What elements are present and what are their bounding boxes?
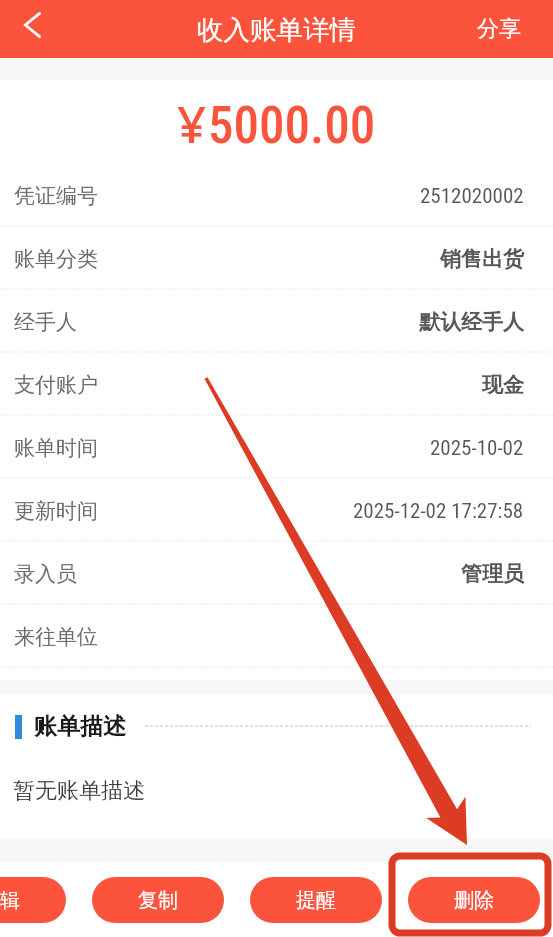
button[interactable]: 经手人	[0, 290, 553, 353]
button[interactable]: 复制	[92, 877, 224, 923]
staticText: 管理员	[461, 561, 524, 587]
staticText: 经手人	[14, 309, 77, 335]
staticText: 2512020002	[420, 184, 524, 209]
staticText: 凭证编号	[14, 183, 98, 209]
staticText: 提醒	[296, 888, 336, 913]
button[interactable]: 凭证编号	[0, 164, 553, 227]
button[interactable]: Back	[0, 0, 62, 58]
staticText: 暂无账单描述	[13, 777, 145, 805]
staticText: 分享	[477, 15, 521, 43]
button[interactable]: 账单分类	[0, 227, 553, 290]
button[interactable]: 更新时间	[0, 479, 553, 542]
staticText: 账单描述	[34, 712, 126, 741]
staticText: 账单时间	[14, 435, 98, 461]
button[interactable]: 来往单位	[0, 605, 553, 668]
staticText: 删除	[454, 888, 494, 913]
button[interactable]: 分享	[471, 7, 527, 51]
staticText: 2025-10-02	[430, 436, 524, 461]
staticText: 录入员	[14, 561, 77, 587]
staticText: 收入账单详情	[197, 13, 356, 46]
staticText: 销售出货	[440, 246, 524, 272]
staticText: 来往单位	[14, 624, 98, 650]
button[interactable]: 账单时间	[0, 416, 553, 479]
staticText: 账单分类	[14, 246, 98, 272]
button[interactable]: 支付账户	[0, 353, 553, 416]
button[interactable]: 录入员	[0, 542, 553, 605]
staticText: 默认经手人	[419, 309, 524, 335]
staticText: 更新时间	[14, 498, 98, 524]
staticText: 复制	[138, 888, 178, 913]
button[interactable]: 编辑	[0, 877, 66, 923]
staticText: 编辑	[0, 888, 20, 913]
staticText: ¥ 5000.00	[177, 88, 376, 157]
button[interactable]: 删除	[408, 877, 540, 923]
button[interactable]: 提醒	[250, 877, 382, 923]
staticText: 2025-12-02 17:27:58	[353, 499, 524, 524]
staticText: 支付账户	[14, 372, 98, 398]
staticText: 现金	[482, 372, 524, 398]
